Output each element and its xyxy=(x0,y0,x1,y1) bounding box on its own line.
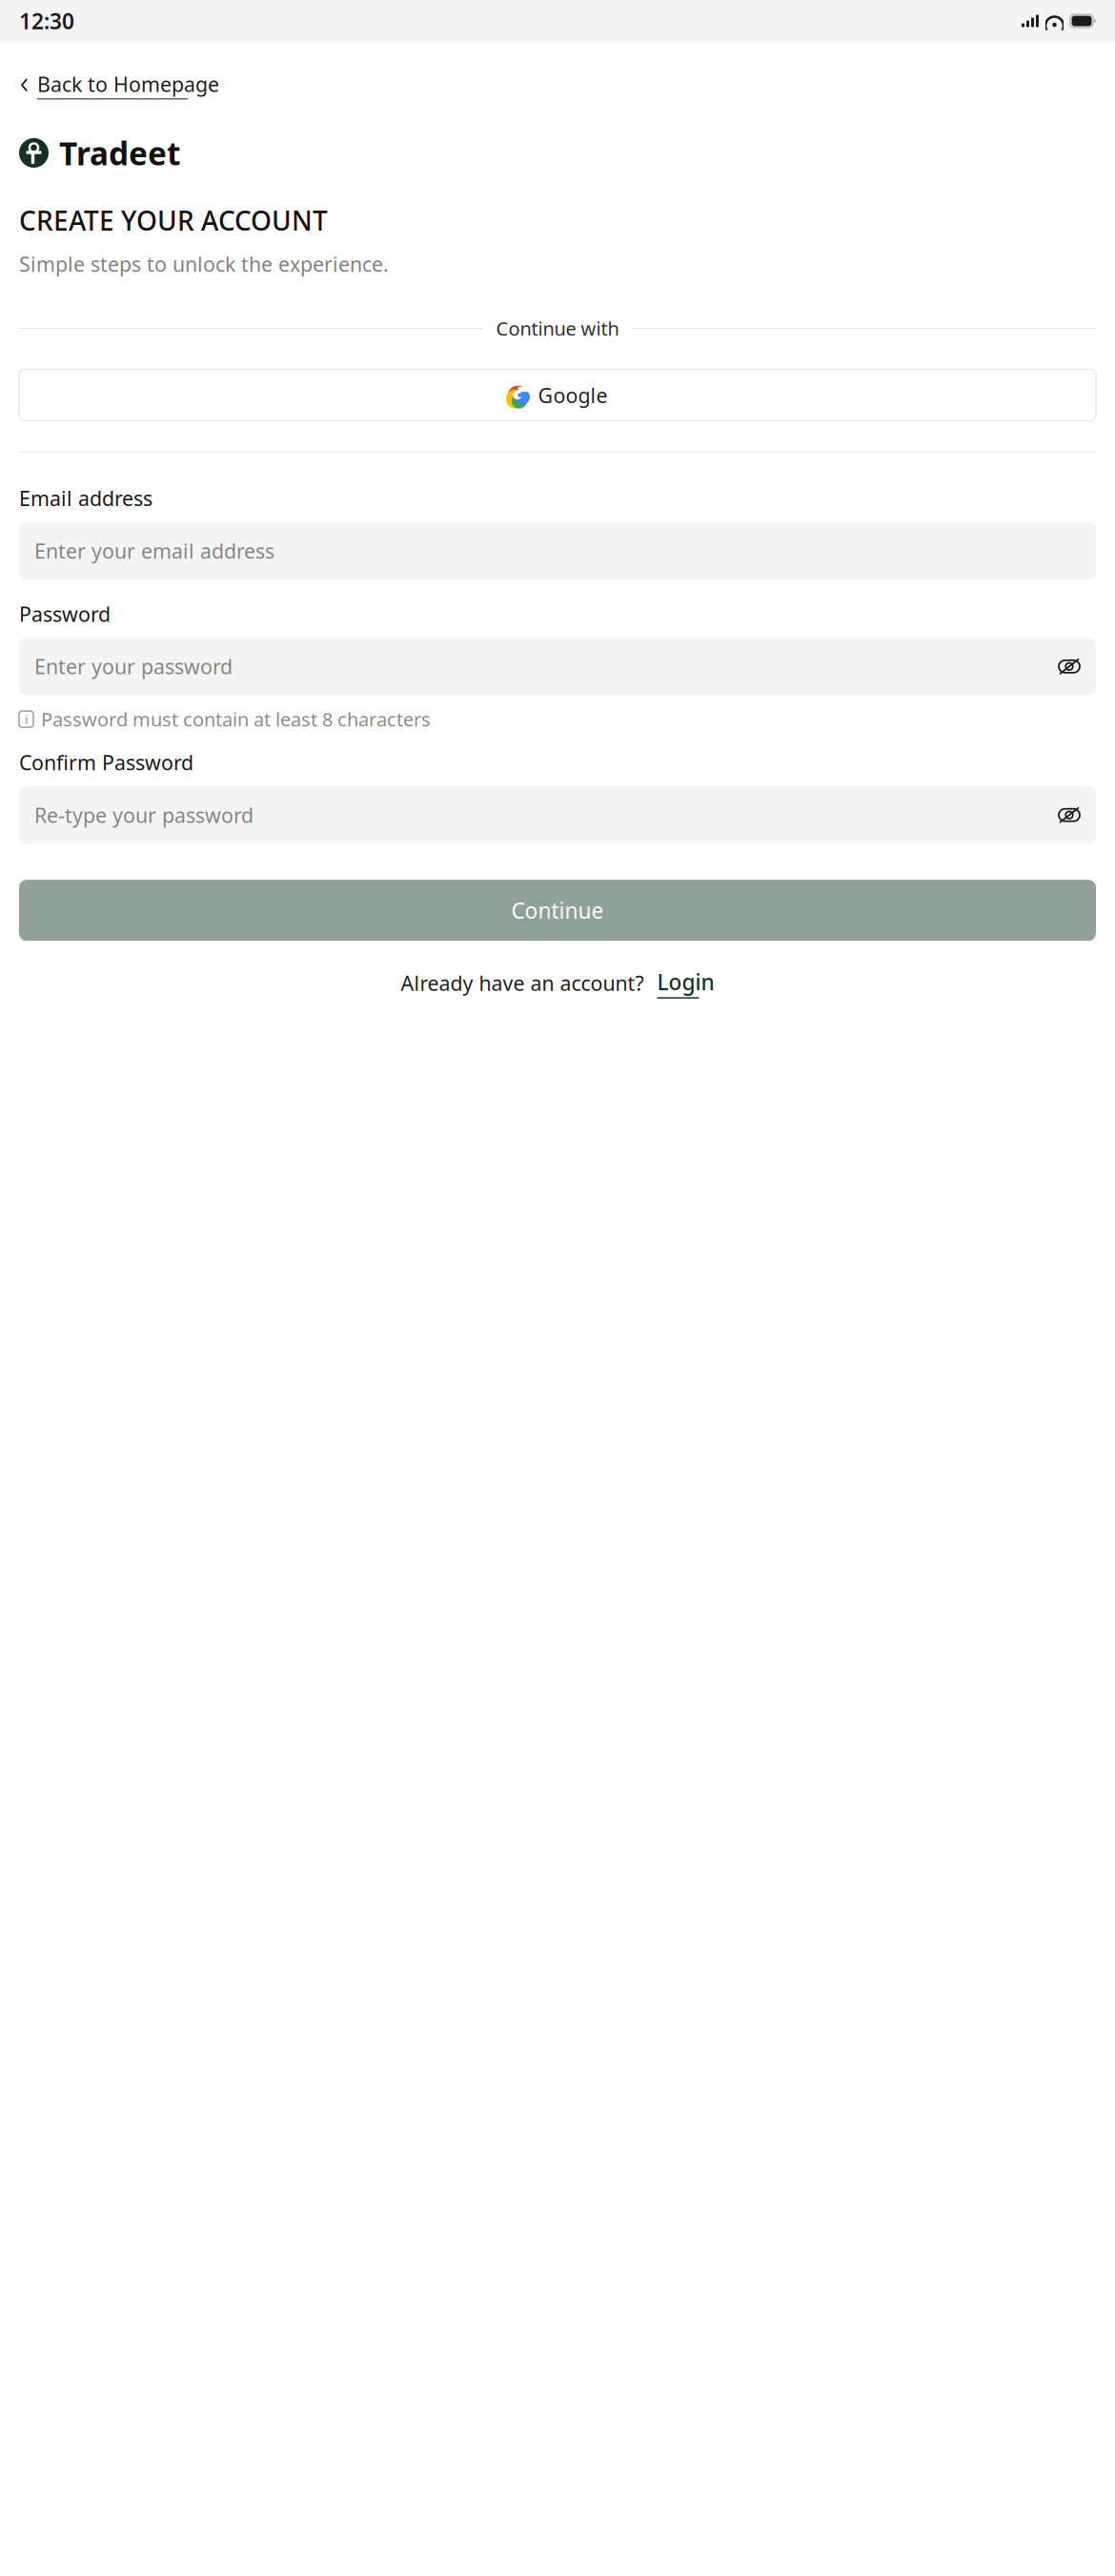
staticText: Google xyxy=(538,382,608,409)
staticText: Password must contain at least 8 charact… xyxy=(41,706,431,732)
staticText: Continue xyxy=(511,896,604,925)
staticText: Email address xyxy=(19,485,152,512)
staticText: Already have an account? xyxy=(401,970,644,997)
staticText: CREATE YOUR ACCOUNT xyxy=(19,203,328,238)
staticText: Login xyxy=(657,968,714,996)
staticText: i xyxy=(25,711,28,728)
staticText: Enter your password xyxy=(34,653,233,680)
button[interactable]: Show password xyxy=(1050,805,1081,825)
staticText: Confirm Password xyxy=(19,749,193,776)
button[interactable]: Google xyxy=(19,369,1096,421)
staticText: Password xyxy=(19,600,111,627)
staticText: Continue with xyxy=(496,316,619,341)
button[interactable]: Back to Homepage xyxy=(19,42,219,99)
staticText: Enter your email address xyxy=(34,537,274,564)
button[interactable]: Show password xyxy=(1050,657,1081,676)
staticText: Tradeet xyxy=(59,132,180,174)
staticText: Re-type your password xyxy=(34,802,253,829)
staticText: 12:30 xyxy=(19,7,74,35)
button[interactable]: Continue xyxy=(19,880,1096,941)
staticText: Back to Homepage xyxy=(37,71,219,97)
staticText: Simple steps to unlock the experience. xyxy=(19,250,389,277)
button[interactable]: Login xyxy=(644,968,714,999)
